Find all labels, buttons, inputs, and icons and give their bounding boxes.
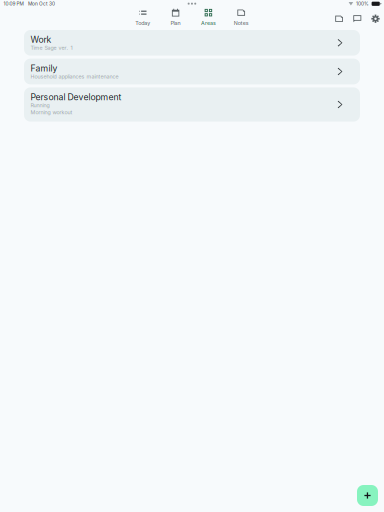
staticText: Personal Development	[31, 92, 122, 102]
staticText: 100%	[356, 1, 369, 7]
button[interactable]: Settings	[367, 13, 383, 24]
button[interactable]: Today	[126, 8, 159, 26]
button[interactable]: Messages	[349, 13, 365, 24]
staticText: Plan	[171, 20, 181, 26]
staticText: Notes	[234, 20, 249, 26]
button[interactable]: Plan	[159, 8, 192, 26]
button[interactable]: Work	[24, 30, 360, 56]
button[interactable]: Add	[357, 485, 378, 506]
staticText: Family	[31, 63, 58, 73]
staticText: Mon Oct 30	[28, 1, 55, 7]
staticText: Time Sage ver. 1	[31, 45, 73, 51]
staticText: 10:09 PM	[3, 1, 23, 7]
staticText: Household appliances maintenance	[31, 73, 119, 80]
staticText: Running	[31, 102, 50, 109]
staticText: Today	[135, 20, 150, 26]
button[interactable]: Areas	[192, 8, 225, 26]
staticText: Areas	[201, 20, 216, 26]
staticText: Work	[31, 34, 52, 45]
button[interactable]: Personal Development	[24, 87, 360, 122]
button[interactable]: Notes	[225, 8, 258, 26]
button[interactable]: New note	[331, 13, 347, 24]
button[interactable]: Family	[24, 59, 360, 84]
staticText: Morning workout	[31, 109, 73, 115]
